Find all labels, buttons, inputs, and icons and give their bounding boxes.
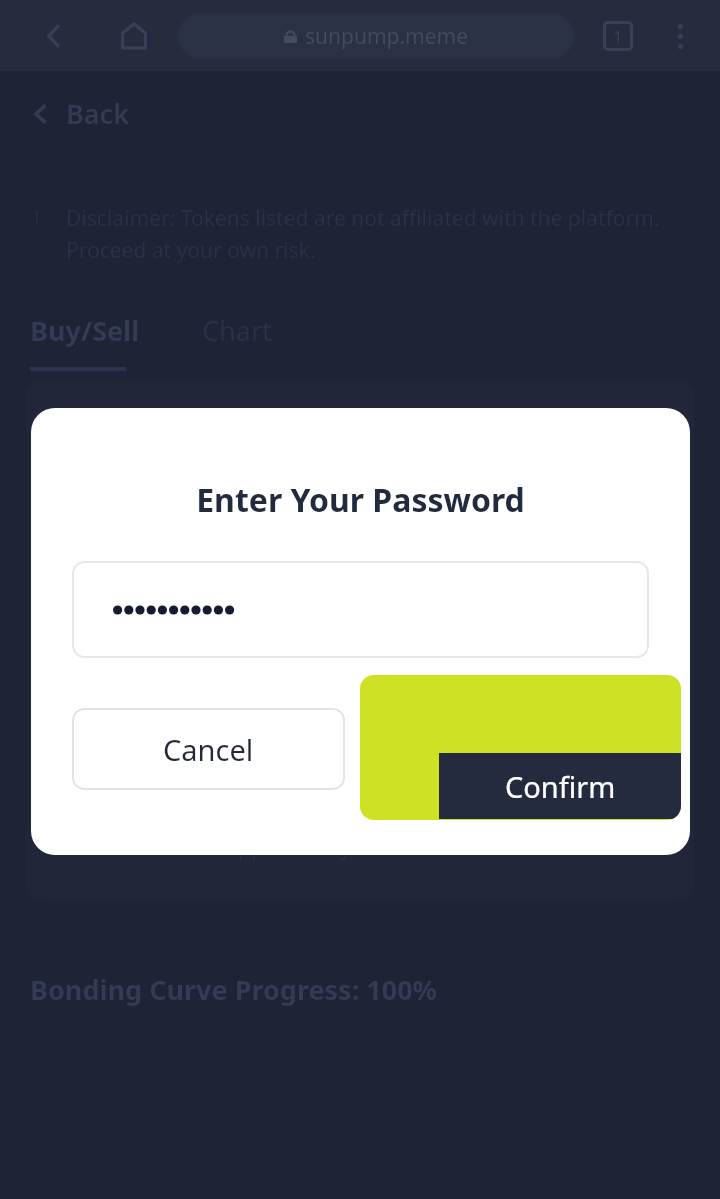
staticText: Please approve in your wallet to confirm — [153, 831, 568, 861]
staticText: sunpump.meme — [305, 22, 469, 51]
button[interactable]: sunpump.meme — [178, 13, 574, 59]
button[interactable]: Password field — [72, 561, 649, 658]
button[interactable]: Tabs — [592, 10, 644, 62]
staticText: Enter Your Password — [196, 478, 525, 522]
button[interactable]: Chart — [202, 312, 272, 349]
button[interactable]: Cancel — [72, 708, 345, 790]
button[interactable]: Back — [28, 95, 130, 132]
staticText: Disclaimer: Tokens listed are not affili… — [66, 204, 686, 264]
staticText: Confirm — [505, 767, 616, 806]
button[interactable]: Home — [108, 10, 160, 62]
staticText: Bonding Curve Progress: 100% — [30, 971, 437, 1008]
button[interactable]: Buy/Sell — [30, 312, 140, 349]
staticText: Chart — [202, 312, 272, 349]
button[interactable]: Confirm — [360, 675, 681, 820]
staticText: 1 — [613, 25, 623, 48]
button[interactable]: Back — [28, 10, 80, 62]
staticText: Buy/Sell — [30, 312, 140, 349]
staticText: Back — [66, 95, 130, 132]
staticText: ! — [34, 204, 40, 231]
button[interactable]: More options — [654, 10, 706, 62]
staticText: Cancel — [163, 730, 254, 769]
